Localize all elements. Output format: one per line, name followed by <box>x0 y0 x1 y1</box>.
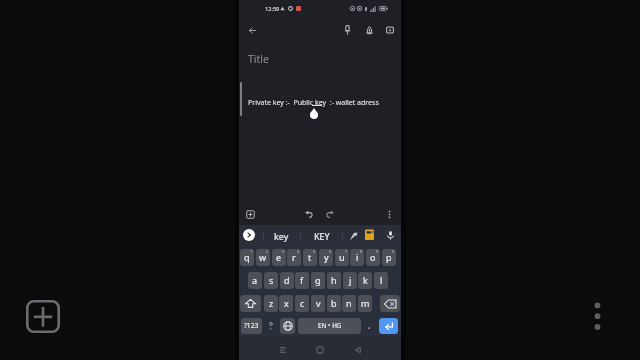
staticText: j <box>349 274 352 286</box>
staticText: o <box>370 251 376 263</box>
button[interactable]: b <box>327 295 341 312</box>
staticText: b <box>331 297 337 309</box>
staticText: 3 <box>282 249 285 254</box>
button[interactable]: l <box>374 272 388 289</box>
button[interactable]: Redo <box>322 206 338 222</box>
button[interactable]: Shift <box>240 295 261 312</box>
staticText: n <box>346 297 352 309</box>
button[interactable]: ?123 <box>241 318 262 334</box>
button[interactable]: m <box>358 295 372 312</box>
button[interactable]: h <box>327 272 341 289</box>
button[interactable]: Home <box>312 342 328 358</box>
staticText: r <box>292 251 296 263</box>
button[interactable]: q <box>240 249 254 266</box>
staticText: 8 <box>360 249 363 254</box>
button[interactable]: Undo <box>301 206 317 222</box>
button[interactable]: a <box>248 272 262 289</box>
button[interactable]: s <box>264 272 278 289</box>
staticText: KEY <box>314 230 330 242</box>
button[interactable]: z <box>264 295 278 312</box>
button[interactable]: v <box>311 295 325 312</box>
staticText: c <box>300 297 305 309</box>
button[interactable]: More options <box>588 300 607 332</box>
staticText: m <box>361 297 370 309</box>
button[interactable]: Archive <box>381 21 399 39</box>
button[interactable]: KEY <box>301 225 342 246</box>
staticText: 9 <box>376 249 379 254</box>
staticText: Title <box>248 52 269 66</box>
button[interactable]: Pin note <box>338 21 356 39</box>
button[interactable]: e <box>272 249 286 266</box>
button[interactable]: key <box>264 225 299 246</box>
button[interactable]: f <box>295 272 309 289</box>
button[interactable]: g <box>311 272 325 289</box>
button[interactable]: More options <box>381 206 397 222</box>
staticText: 1 <box>250 249 253 254</box>
button[interactable]: Recent apps <box>275 342 291 358</box>
staticText: k <box>363 274 368 286</box>
staticText: g <box>315 274 321 286</box>
staticText: u <box>339 251 345 263</box>
button[interactable]: r <box>287 249 301 266</box>
button[interactable]: Enter <box>379 318 398 334</box>
button[interactable]: Clipboard <box>365 229 374 240</box>
button[interactable]: j <box>343 272 357 289</box>
button[interactable]: Change language <box>280 318 295 334</box>
staticText: ?123 <box>244 321 259 330</box>
button[interactable]: Backspace <box>380 295 400 312</box>
staticText: Private key :- Public key :- wallet adre… <box>248 98 379 108</box>
staticText: a <box>252 274 258 286</box>
staticText: d <box>284 274 290 286</box>
staticText: key <box>274 230 289 242</box>
button[interactable]: Back <box>350 342 366 358</box>
staticText: v <box>316 297 321 309</box>
staticText: 0 <box>392 249 395 254</box>
button[interactable]: c <box>295 295 309 312</box>
button[interactable]: Emoji <box>264 318 278 334</box>
staticText: z <box>269 297 274 309</box>
staticText: e <box>276 251 282 263</box>
staticText: l <box>380 274 383 286</box>
staticText: p <box>386 251 392 263</box>
button[interactable]: u <box>335 249 349 266</box>
staticText: s <box>269 274 274 286</box>
staticText: 2 <box>266 249 269 254</box>
button[interactable]: t <box>303 249 317 266</box>
button[interactable]: d <box>280 272 294 289</box>
staticText: y <box>324 251 329 263</box>
staticText: 5 <box>313 249 316 254</box>
button[interactable]: w <box>256 249 270 266</box>
button[interactable]: Reminder <box>360 21 378 39</box>
button[interactable]: Period <box>362 318 376 334</box>
staticText: 6 <box>329 249 332 254</box>
staticText: q <box>244 251 250 263</box>
button[interactable]: Back <box>243 21 261 39</box>
button[interactable]: x <box>279 295 293 312</box>
button[interactable]: o <box>366 249 380 266</box>
staticText: EN • HG <box>318 321 342 330</box>
button[interactable]: p <box>382 249 396 266</box>
button[interactable]: EN • HG <box>298 318 361 334</box>
button[interactable]: i <box>350 249 364 266</box>
staticText: 4 <box>297 249 300 254</box>
staticText: x <box>284 297 289 309</box>
button[interactable]: Add <box>26 300 60 333</box>
staticText: i <box>356 251 359 263</box>
staticText: 12:59 <box>265 5 280 13</box>
button[interactable]: n <box>342 295 356 312</box>
staticText: t <box>308 251 312 263</box>
button[interactable]: Show more suggestions <box>243 229 255 241</box>
staticText: w <box>259 251 267 263</box>
button[interactable]: Add attachment <box>242 206 258 222</box>
button[interactable]: y <box>319 249 333 266</box>
staticText: h <box>331 274 337 286</box>
staticText: f <box>300 274 304 286</box>
button[interactable]: Handwriting <box>346 229 360 243</box>
staticText: 7 <box>345 249 348 254</box>
button[interactable]: Voice input <box>384 229 397 242</box>
button[interactable]: k <box>358 272 372 289</box>
